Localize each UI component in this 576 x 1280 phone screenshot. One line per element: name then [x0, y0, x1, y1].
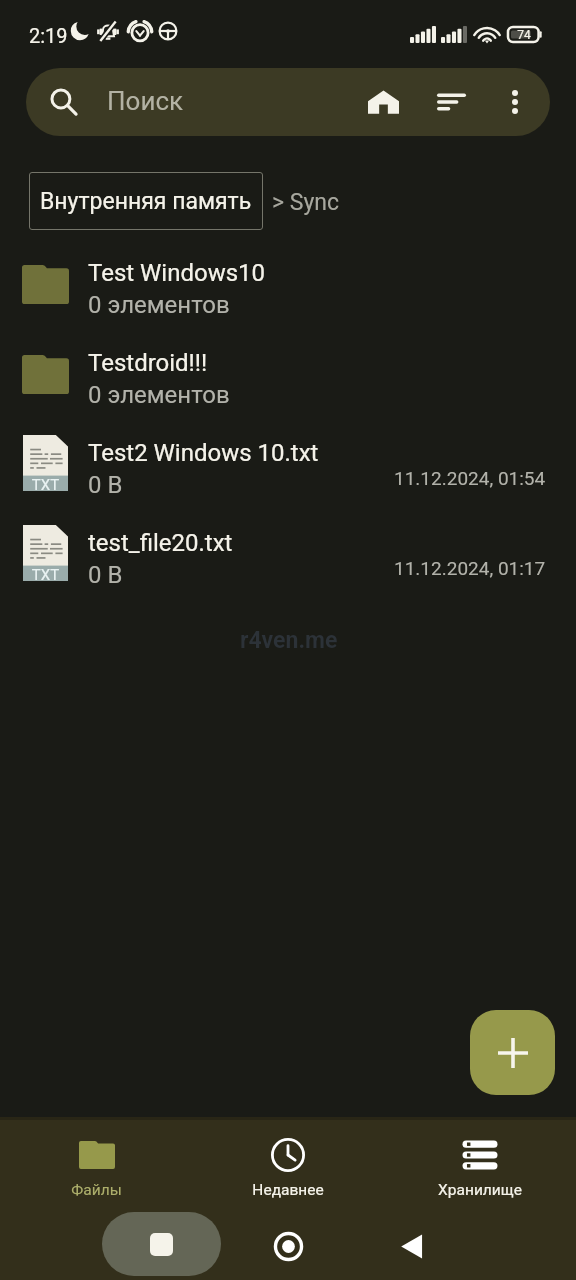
staticText: 0 элементов	[88, 381, 230, 409]
staticText: r4ven.me	[240, 627, 338, 654]
staticText: 11.12.2024, 01:54	[394, 467, 546, 489]
staticText: Testdroid!!!	[88, 349, 208, 377]
button[interactable]: Add	[470, 1010, 555, 1095]
staticText: test_file20.txt	[88, 529, 233, 557]
button[interactable]: Хранилище	[384, 1117, 576, 1211]
button[interactable]: TXT	[0, 428, 576, 518]
button[interactable]: Sort	[429, 80, 473, 124]
staticText: TXT	[23, 566, 68, 584]
button[interactable]: > Sync	[272, 189, 340, 216]
staticText: Поиск	[107, 86, 184, 116]
button[interactable]: More options	[493, 80, 537, 124]
button[interactable]: TXT	[0, 518, 576, 608]
staticText: 0 элементов	[88, 291, 230, 319]
button[interactable]: Back	[389, 1223, 435, 1269]
staticText: 74	[513, 28, 535, 42]
button[interactable]: Test Windows10	[0, 248, 576, 338]
staticText: Файлы	[71, 1181, 122, 1199]
staticText: 11.12.2024, 01:17	[394, 557, 546, 579]
button[interactable]: Поиск	[26, 68, 550, 136]
button[interactable]: Testdroid!!!	[0, 338, 576, 428]
staticText: 0 B	[88, 471, 123, 499]
staticText: Внутренняя память	[40, 188, 252, 215]
button[interactable]: Недавнее	[192, 1117, 384, 1211]
staticText: Test Windows10	[88, 259, 266, 287]
staticText: 0 B	[88, 561, 123, 589]
button[interactable]: Внутренняя память	[29, 172, 263, 230]
staticText: Хранилище	[438, 1181, 522, 1199]
staticText: TXT	[23, 476, 68, 494]
staticText: Test2 Windows 10.txt	[88, 439, 319, 467]
staticText: Недавнее	[252, 1181, 324, 1199]
staticText: 2:19	[29, 24, 68, 47]
button[interactable]: Home	[361, 80, 405, 124]
button[interactable]: Файлы	[0, 1117, 192, 1211]
button[interactable]: Recents	[102, 1212, 221, 1276]
button[interactable]: Home	[265, 1223, 311, 1269]
